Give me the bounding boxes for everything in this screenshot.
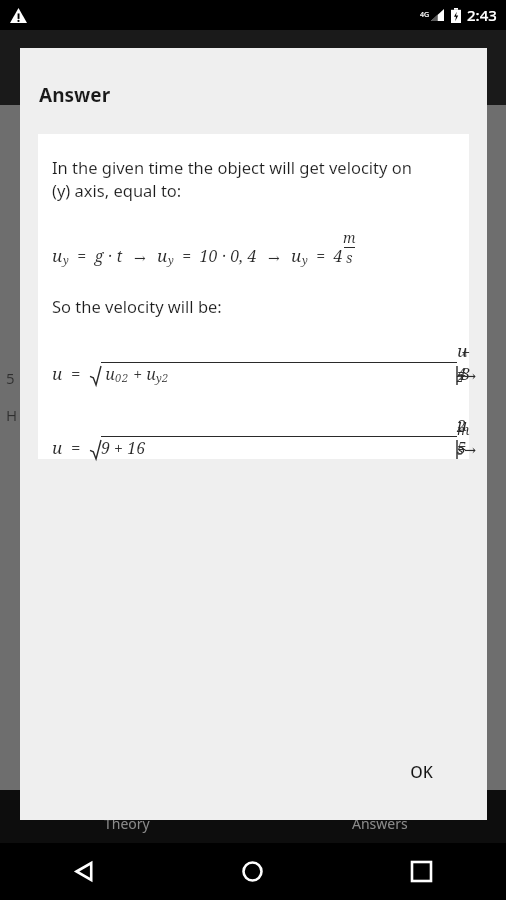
staticText: 9 + 16: [101, 437, 146, 459]
button[interactable]: OK: [396, 752, 447, 792]
button[interactable]: Recent apps: [337, 843, 506, 900]
staticText: = 10 · 0, 4: [174, 245, 257, 267]
staticText: m: [343, 228, 356, 247]
staticText: u: [101, 363, 115, 385]
staticText: u =: [52, 362, 90, 385]
staticText: y: [63, 252, 69, 267]
staticText: s: [346, 248, 353, 267]
staticText: 5: [6, 368, 15, 388]
staticText: →: [123, 248, 157, 267]
staticText: y: [156, 370, 162, 385]
staticText: y: [168, 252, 174, 267]
staticText: u: [157, 244, 168, 267]
staticText: u: [52, 244, 63, 267]
button[interactable]: Home: [168, 843, 337, 900]
staticText: = 4: [308, 245, 343, 267]
staticText: 2: [162, 370, 169, 385]
staticText: u =: [52, 436, 90, 459]
staticText: →: [257, 248, 291, 267]
button[interactable]: Back: [0, 843, 168, 900]
staticText: H: [6, 405, 18, 425]
staticText: 2: [122, 370, 129, 385]
staticText: 0: [115, 370, 122, 385]
staticText: Theory: [104, 814, 150, 833]
staticText: + u: [129, 363, 156, 385]
staticText: So the velocity will be:: [52, 295, 222, 317]
staticText: u: [291, 244, 302, 267]
staticText: In the given time the object will get ve…: [52, 156, 412, 202]
staticText: OK: [410, 761, 433, 783]
staticText: Answers: [352, 814, 408, 833]
staticText: 4G: [420, 10, 430, 20]
staticText: = g · t: [69, 245, 123, 267]
staticText: 2:43: [467, 5, 497, 25]
staticText: Answer: [39, 82, 111, 108]
staticText: y: [302, 252, 308, 267]
